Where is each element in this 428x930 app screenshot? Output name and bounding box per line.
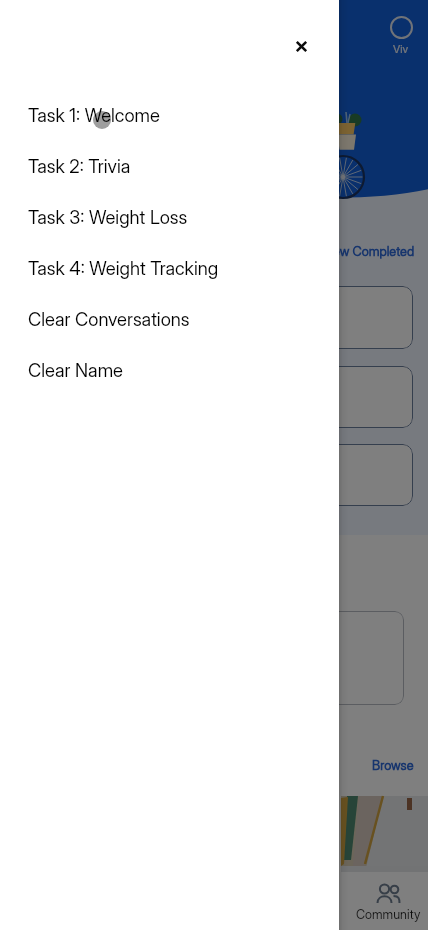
staticText: Task 2: Trivia <box>28 155 131 177</box>
staticText: View Completed <box>322 244 415 259</box>
button[interactable]: View Completed <box>250 239 415 263</box>
button[interactable] <box>223 286 413 349</box>
button[interactable]: Browse <box>340 753 414 777</box>
staticText: Community <box>356 907 421 922</box>
button[interactable]: Clear Conversations <box>0 293 339 344</box>
button[interactable] <box>214 611 404 705</box>
staticText: Viv <box>393 42 409 55</box>
button[interactable] <box>223 444 413 506</box>
staticText: Task 1: Welcome <box>28 104 160 126</box>
staticText: Task 4: Weight Tracking <box>28 257 219 279</box>
button[interactable]: Profile Viv <box>381 16 421 55</box>
staticText: Browse <box>372 758 414 773</box>
staticText: Task 3: Weight Loss <box>28 206 188 228</box>
button[interactable]: Task 3: Weight Loss <box>0 191 339 242</box>
button[interactable]: Close menu <box>285 30 318 63</box>
staticText: Clear Conversations <box>28 308 190 330</box>
button[interactable]: Task 4: Weight Tracking <box>0 242 339 293</box>
button[interactable]: Task 2: Trivia <box>0 140 339 191</box>
button[interactable] <box>223 366 413 428</box>
button[interactable]: Task 1: Welcome <box>0 89 339 140</box>
button[interactable]: Clear Name <box>0 344 339 395</box>
staticText: Clear Name <box>28 359 123 381</box>
button[interactable]: Community <box>352 881 424 922</box>
